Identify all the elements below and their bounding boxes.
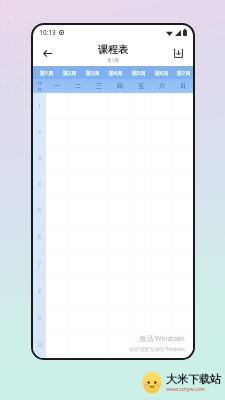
button[interactable]: 第5周 [127,66,150,79]
staticText: 第1周 [107,57,119,63]
staticText: 第2周 [62,69,77,77]
button[interactable]: 第7周 [173,66,193,79]
button[interactable]: Export [169,44,187,62]
staticText: 六 [159,82,165,90]
button[interactable]: 三 [88,79,109,93]
button[interactable]: 第6周 [150,66,173,79]
button[interactable]: 第3周 [81,66,104,79]
button[interactable]: 一 [46,79,67,93]
staticText: 课程表 [98,43,128,56]
staticText: 月 [37,87,42,92]
staticText: 激活 Windows [139,334,185,344]
staticText: 转到"设置"以激活 Windows [129,346,185,352]
staticText: 2 [38,129,41,135]
staticText: 一 [54,82,60,90]
staticText: 第7周 [176,69,191,77]
button[interactable]: 第2周 [58,66,81,79]
staticText: 五 [138,82,144,90]
staticText: 4 [38,181,41,187]
staticText: 7 [38,261,41,267]
button[interactable]: 五 [130,79,151,93]
button[interactable]: 四 [109,79,130,93]
staticText: 8 [38,288,41,294]
staticText: 日 [180,82,186,90]
staticText: 二 [75,82,81,90]
button[interactable]: 第4周 [104,66,127,79]
staticText: 三 [96,82,102,90]
staticText: 第6周 [154,69,169,77]
button[interactable]: 第1周 [35,66,58,79]
staticText: 10 [37,342,43,348]
staticText: 3 [38,155,41,161]
staticText: 第3周 [85,69,100,77]
staticText: www.zzhyw.com [166,386,205,393]
staticText: 四 [117,82,123,90]
button[interactable]: 六 [151,79,172,93]
staticText: 10:13 [39,28,56,37]
staticText: 第4周 [108,69,123,77]
staticText: 6 [38,234,41,240]
button[interactable]: 二 [67,79,88,93]
button[interactable]: 日 [172,79,193,93]
staticText: 11 [37,81,42,87]
staticText: 大米下载站 [166,372,221,386]
staticText: 第1周 [39,69,54,77]
staticText: 1 [38,103,41,109]
button[interactable]: Back [38,44,56,62]
staticText: 9 [38,315,41,321]
staticText: 第5周 [131,69,146,77]
button[interactable]: 课程表 [98,43,128,63]
staticText: 5 [38,207,41,213]
